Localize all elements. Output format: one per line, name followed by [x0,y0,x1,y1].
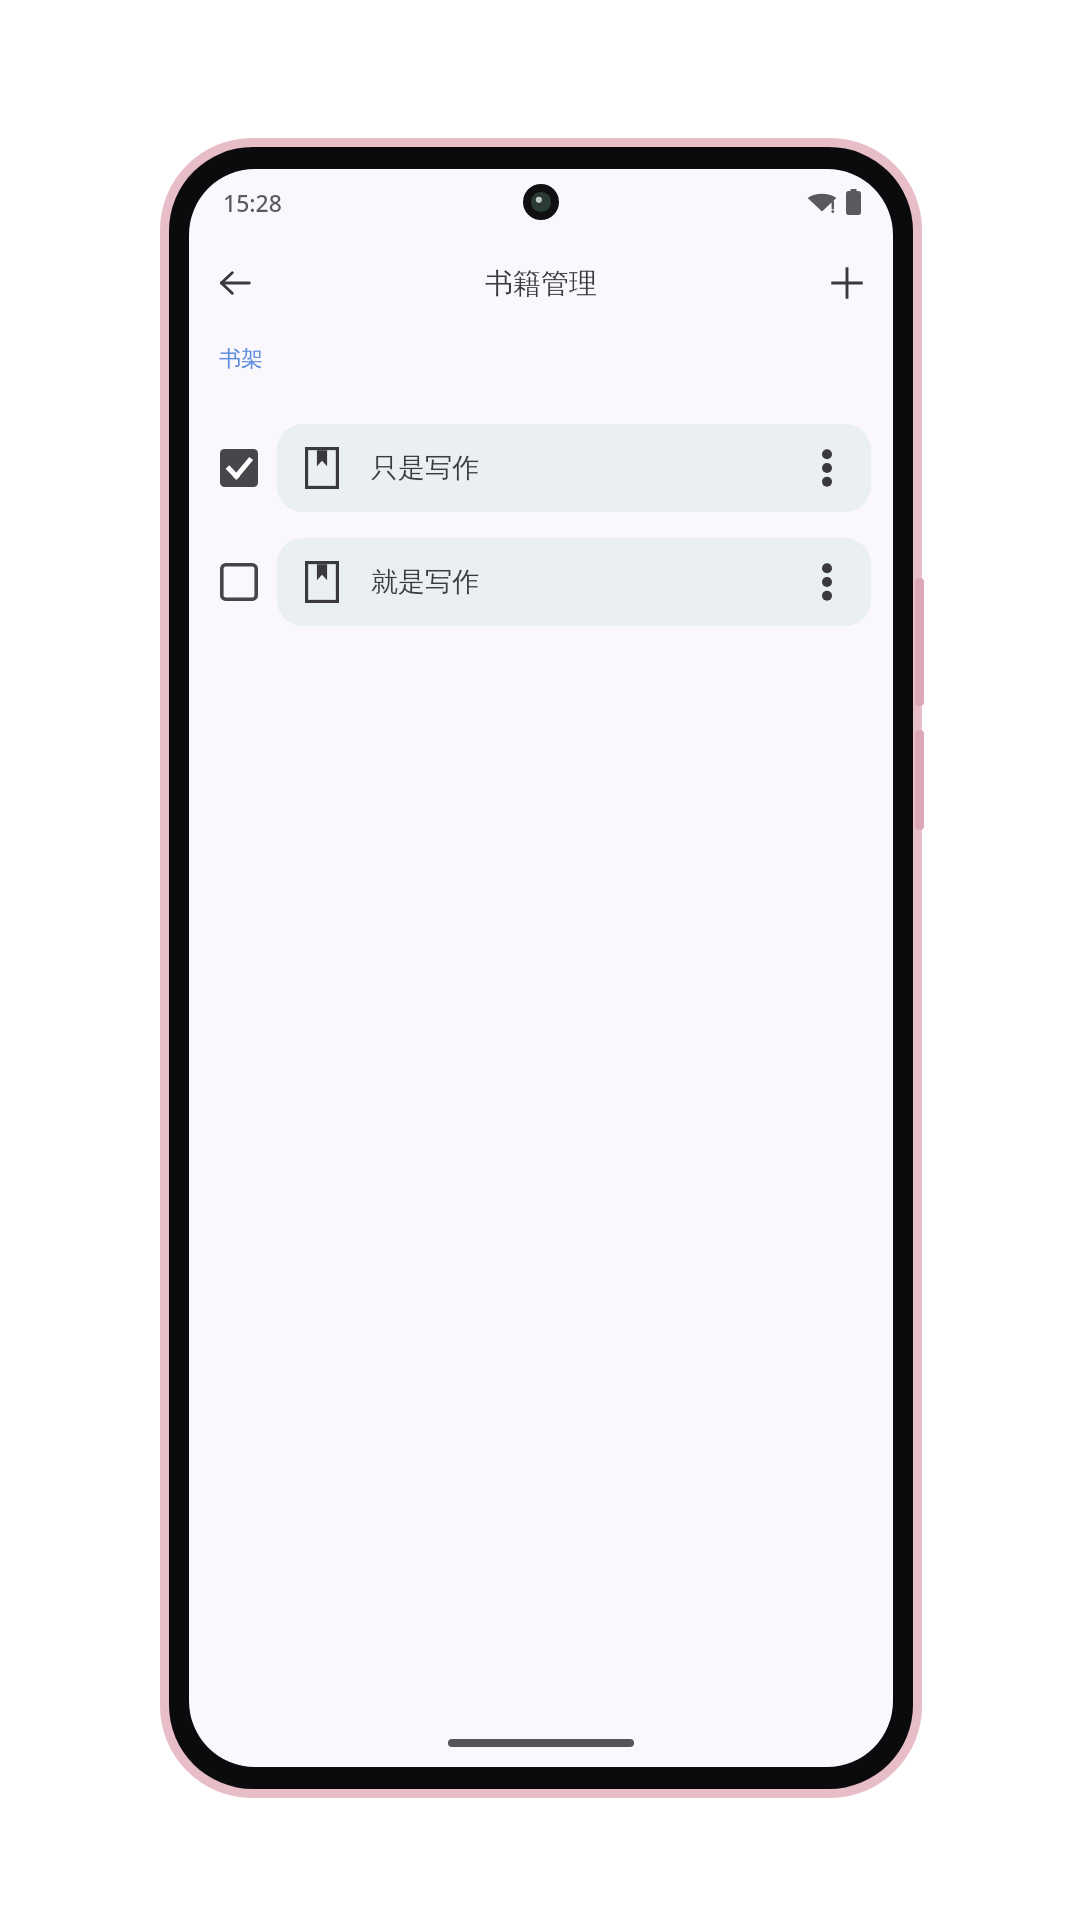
staticText: 只是写作 [371,451,795,485]
button[interactable]: Selected [207,436,271,500]
staticText: 书籍管理 [485,266,597,301]
button[interactable]: More options [795,436,859,500]
button[interactable]: 书架 [189,341,893,377]
button[interactable]: Back [203,251,267,315]
button[interactable]: 就是写作 [277,538,871,626]
button[interactable]: Not selected [207,550,271,614]
staticText: 书架 [219,345,263,373]
button[interactable]: Add book [815,251,879,315]
staticText: 15:28 [223,187,282,218]
button[interactable]: 只是写作 [277,424,871,512]
button[interactable]: More options [795,550,859,614]
staticText: 就是写作 [371,565,795,599]
